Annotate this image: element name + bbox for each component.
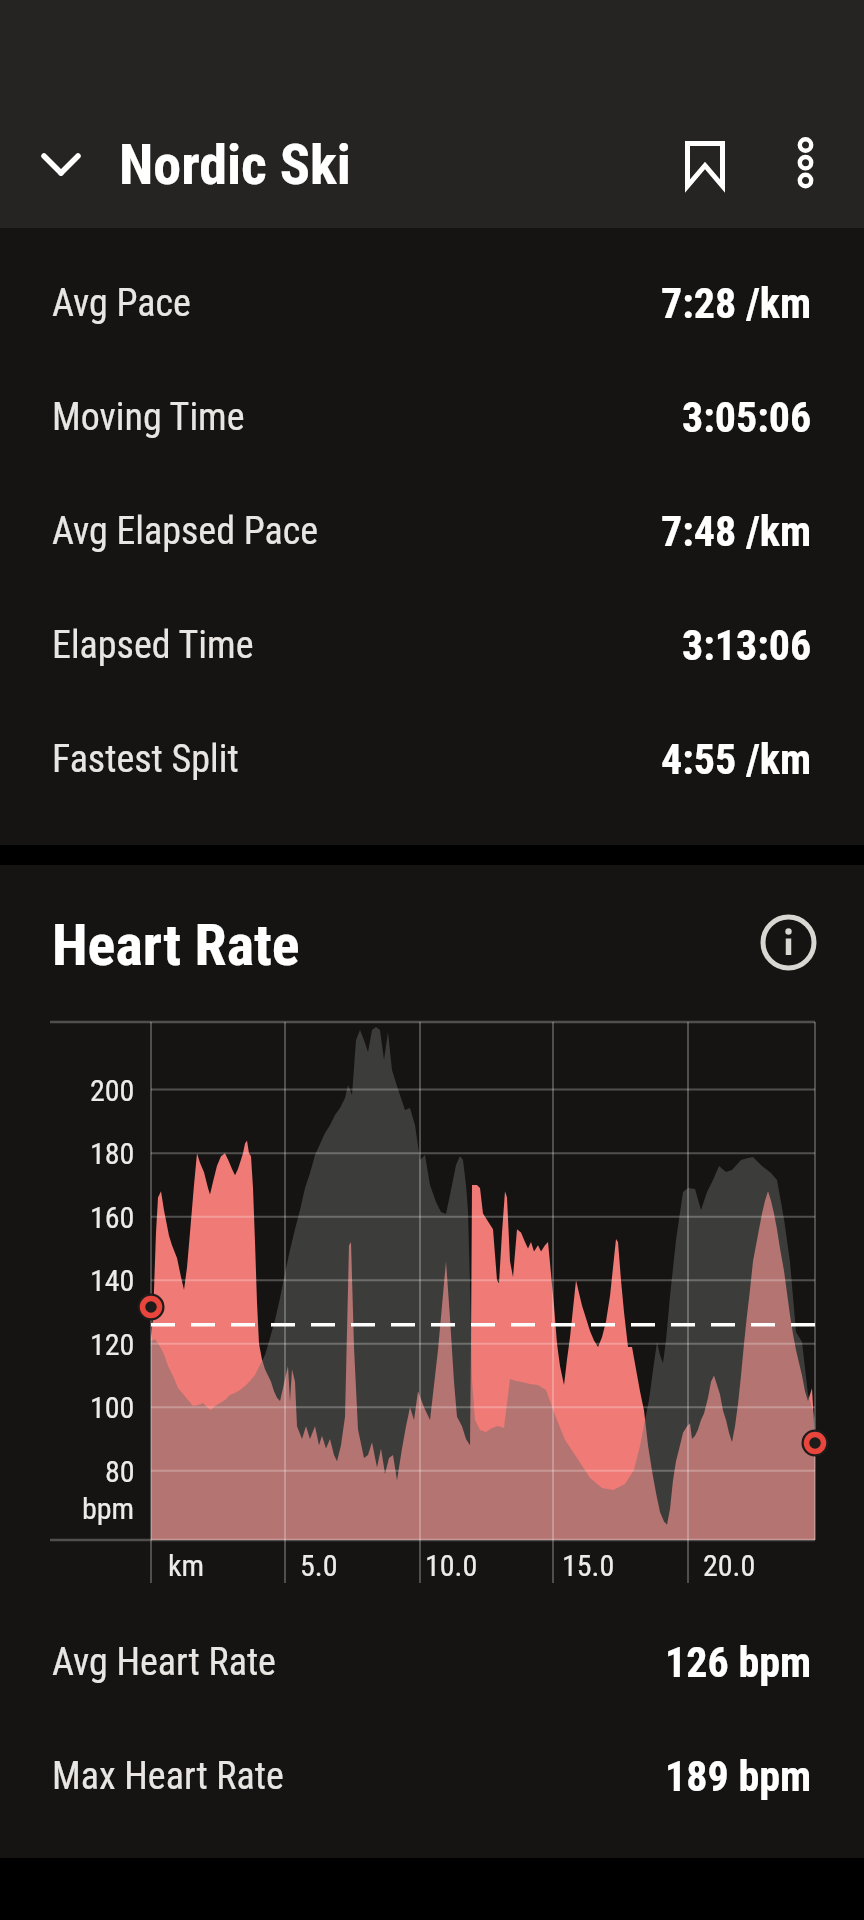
staticText: bpm bbox=[82, 1491, 135, 1526]
button[interactable] bbox=[30, 136, 92, 190]
staticText: Max Heart Rate bbox=[52, 1754, 284, 1799]
staticText: 20.0 bbox=[703, 1548, 756, 1583]
staticText: 80 bbox=[105, 1454, 135, 1489]
button[interactable] bbox=[675, 131, 735, 195]
staticText: Elapsed Time bbox=[52, 623, 254, 668]
staticText: 140 bbox=[90, 1263, 135, 1298]
staticText: Avg Heart Rate bbox=[52, 1640, 276, 1685]
staticText: 3:13:06 bbox=[682, 621, 812, 670]
staticText: Avg Elapsed Pace bbox=[52, 509, 319, 554]
staticText: Avg Pace bbox=[52, 281, 191, 326]
staticText: Nordic Ski bbox=[119, 132, 351, 198]
staticText: 10.0 bbox=[425, 1548, 478, 1583]
staticText: 7:48 /km bbox=[661, 507, 812, 556]
staticText: 5.0 bbox=[300, 1548, 338, 1583]
staticText: 189 bpm bbox=[665, 1752, 812, 1801]
staticText: 200 bbox=[90, 1073, 135, 1108]
staticText: Fastest Split bbox=[52, 737, 239, 782]
staticText: Moving Time bbox=[52, 395, 245, 440]
staticText: 4:55 /km bbox=[661, 735, 812, 784]
staticText: km bbox=[168, 1548, 205, 1583]
staticText: 15.0 bbox=[562, 1548, 615, 1583]
staticText: 100 bbox=[90, 1390, 135, 1425]
button[interactable] bbox=[756, 910, 821, 975]
staticText: 126 bpm bbox=[665, 1638, 812, 1687]
staticText: 3:05:06 bbox=[682, 393, 812, 442]
button[interactable] bbox=[775, 126, 837, 200]
staticText: 180 bbox=[90, 1136, 135, 1171]
staticText: Heart Rate bbox=[52, 911, 300, 979]
staticText: 160 bbox=[90, 1200, 135, 1235]
staticText: 120 bbox=[90, 1327, 135, 1362]
staticText: 7:28 /km bbox=[661, 279, 812, 328]
